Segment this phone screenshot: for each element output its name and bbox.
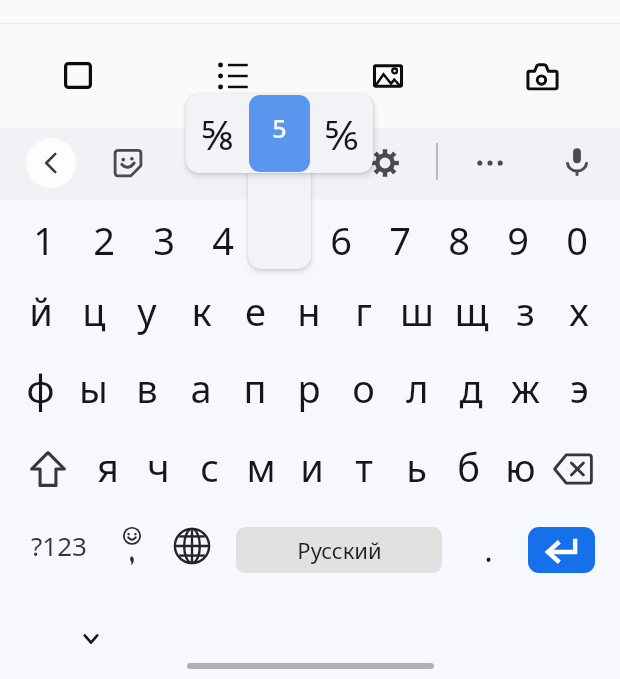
button[interactable]: More options [466,139,514,187]
staticText: 8 [448,214,470,266]
button[interactable]: е [228,276,282,353]
button[interactable]: Enter [528,527,595,573]
button[interactable]: г [336,276,390,353]
staticText: ?123 [31,528,87,563]
button[interactable]: н [282,276,336,353]
button[interactable]: Hide keyboard [69,617,113,661]
button[interactable]: 3 [134,199,193,276]
button[interactable]: Text list [155,24,310,128]
staticText: 0 [566,214,588,266]
staticText: д [459,362,483,414]
staticText: . [484,528,493,572]
staticText: 1 [33,214,55,266]
staticText: 5 [272,111,287,145]
button[interactable]: 4 [193,199,252,276]
button[interactable]: Camera [465,24,620,128]
button[interactable]: т [338,430,390,507]
button[interactable]: 1 [14,199,74,276]
button[interactable]: ф [14,353,67,430]
staticText: у [137,285,157,337]
staticText: 6 [330,214,352,266]
button[interactable]: . [462,507,514,584]
staticText: ь [406,441,427,493]
staticText: щ [454,285,489,337]
staticText: Русский [297,535,382,565]
staticText: 3 [153,214,175,266]
button[interactable]: 8 [429,199,488,276]
button[interactable]: 5 [252,199,311,276]
staticText: э [570,362,589,414]
staticText: ы [79,362,108,414]
button[interactable]: я [82,430,133,507]
button[interactable]: о [336,353,390,430]
button[interactable]: э [552,353,606,430]
staticText: 7 [389,214,411,266]
button[interactable]: 7 [370,199,429,276]
button[interactable]: ⅝ [186,94,249,173]
staticText: я [97,441,119,493]
button[interactable]: к [174,276,228,353]
button[interactable]: Back [26,138,76,188]
button[interactable]: Shift [14,430,82,507]
staticText: ш [400,285,434,337]
button[interactable]: х [552,276,606,353]
staticText: м [246,441,276,493]
staticText: к [191,285,212,337]
staticText: ⅝ [201,107,235,161]
button[interactable]: щ [444,276,498,353]
button[interactable]: ш [390,276,444,353]
staticText: т [355,441,373,493]
button[interactable]: ц [67,276,120,353]
staticText: б [457,441,480,493]
staticText: а [190,362,212,414]
button[interactable]: в [120,353,174,430]
button[interactable]: з [498,276,552,353]
button[interactable]: п [228,353,282,430]
button[interactable]: с [184,430,235,507]
staticText: ф [26,362,55,414]
button[interactable]: Backspace [546,430,606,507]
button[interactable]: д [444,353,498,430]
button[interactable]: р [282,353,336,430]
staticText: и [300,441,324,493]
button[interactable]: Clipboard [0,24,155,128]
staticText: с [200,441,219,493]
button[interactable]: ?123 [20,507,98,584]
button[interactable]: 0 [547,199,606,276]
button[interactable]: л [390,353,444,430]
staticText: р [297,362,321,414]
staticText: з [516,285,535,337]
button[interactable]: 9 [488,199,547,276]
staticText: ж [511,362,540,414]
button[interactable]: Gallery [310,24,465,128]
button[interactable]: Change language [164,507,220,584]
staticText: ⅚ [325,107,358,161]
staticText: ч [147,441,170,493]
button[interactable]: б [442,430,494,507]
button[interactable]: м [235,430,286,507]
button[interactable]: а [174,353,228,430]
button[interactable]: ч [133,430,184,507]
staticText: п [243,362,267,414]
staticText: о [352,362,375,414]
button[interactable]: ⅚ [310,94,373,173]
button[interactable]: 6 [311,199,370,276]
staticText: н [297,285,321,337]
button[interactable]: 2 [74,199,134,276]
staticText: х [569,285,589,337]
button[interactable]: Settings [361,139,409,187]
button[interactable]: у [120,276,174,353]
button[interactable]: 5 [249,95,310,172]
button[interactable]: и [286,430,338,507]
button[interactable]: й [14,276,67,353]
button[interactable]: Русский [236,527,442,573]
staticText: г [355,285,372,337]
button[interactable]: Voice input [553,138,601,186]
button[interactable]: ж [498,353,552,430]
staticText: ю [505,441,536,493]
button[interactable]: Emoji [104,507,160,584]
button[interactable]: ы [67,353,120,430]
button[interactable]: Stickers [104,139,152,187]
button[interactable]: ю [494,430,546,507]
button[interactable]: ь [390,430,442,507]
